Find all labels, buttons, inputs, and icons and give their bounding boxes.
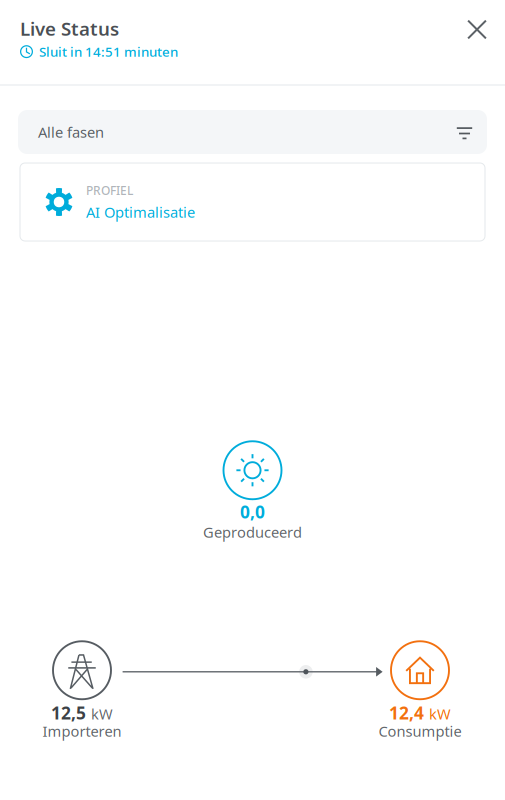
staticText: Live Status — [20, 16, 119, 41]
staticText: PROFIEL — [86, 182, 133, 198]
staticText: 0,0 — [240, 500, 265, 523]
button[interactable]: Alle fasen — [18, 110, 487, 154]
staticText: Alle fasen — [38, 122, 104, 142]
staticText: kW — [429, 704, 451, 724]
staticText: Consumptie — [378, 721, 461, 741]
staticText: Sluit in 14:51 minuten — [39, 43, 178, 60]
staticText: AI Optimalisatie — [86, 202, 195, 222]
button[interactable]: PROFIEL — [20, 163, 485, 241]
staticText: Importeren — [42, 721, 121, 741]
button[interactable]: Sluiten — [455, 7, 499, 51]
staticText: Geproduceerd — [203, 522, 302, 542]
staticText: 12,5 — [51, 701, 86, 724]
staticText: 12,4 — [389, 701, 424, 724]
staticText: kW — [91, 704, 113, 724]
